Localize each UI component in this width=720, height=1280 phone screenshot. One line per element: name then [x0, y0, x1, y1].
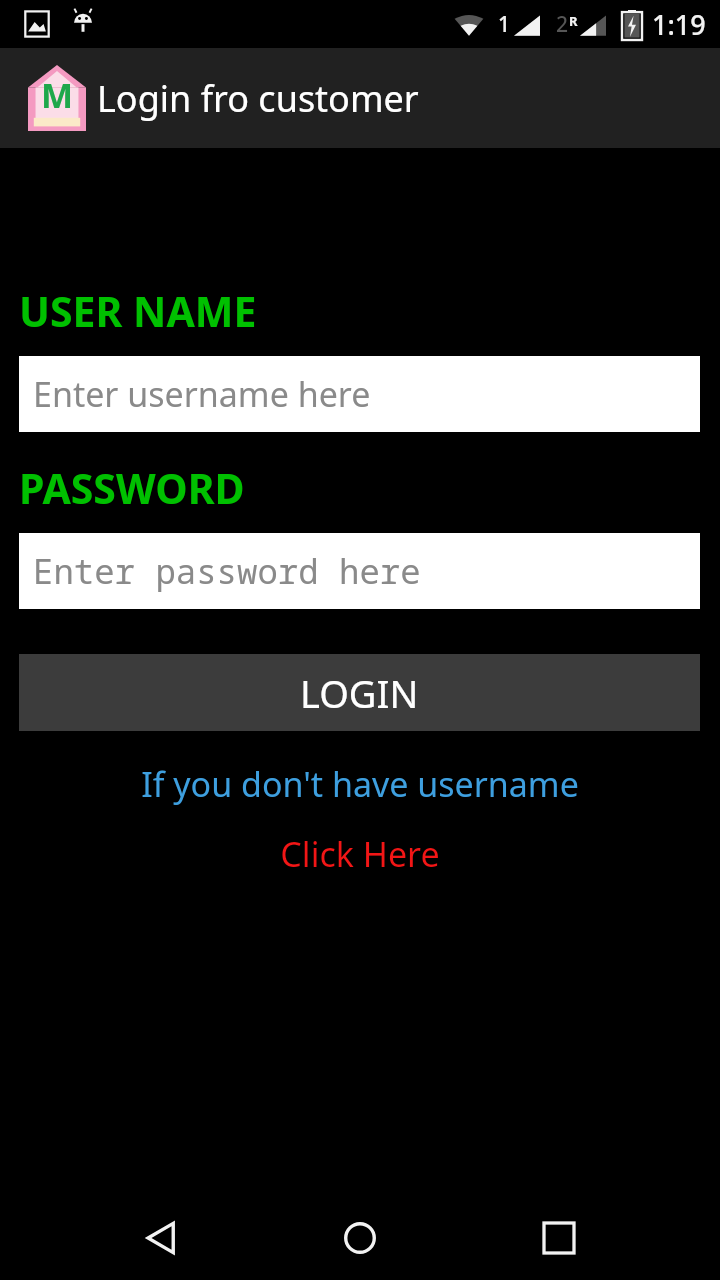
staticText: Enter password here	[33, 548, 421, 594]
staticText: PASSWORD	[19, 460, 245, 516]
staticText: USER NAME	[19, 283, 257, 339]
button[interactable]: LOGIN	[19, 654, 700, 731]
button[interactable]: If you don't have username	[0, 761, 720, 807]
staticText: Click Here	[280, 831, 440, 877]
button[interactable]: Back	[123, 1200, 199, 1276]
staticText: If you don't have username	[141, 761, 579, 807]
staticText: 1	[498, 10, 511, 39]
staticText: LOGIN	[300, 667, 419, 719]
staticText: Enter username here	[33, 371, 371, 417]
button[interactable]: Enter password here	[19, 533, 700, 609]
staticText: 1:19	[652, 6, 706, 43]
button[interactable]: Recent apps	[521, 1200, 597, 1276]
button[interactable]: Home	[322, 1200, 398, 1276]
button[interactable]: Click Here	[0, 831, 720, 877]
button[interactable]: Enter username here	[19, 356, 700, 432]
staticText: 2	[556, 10, 569, 39]
staticText: M	[34, 72, 80, 118]
staticText: R	[569, 12, 578, 30]
staticText: Login fro customer	[97, 74, 419, 123]
